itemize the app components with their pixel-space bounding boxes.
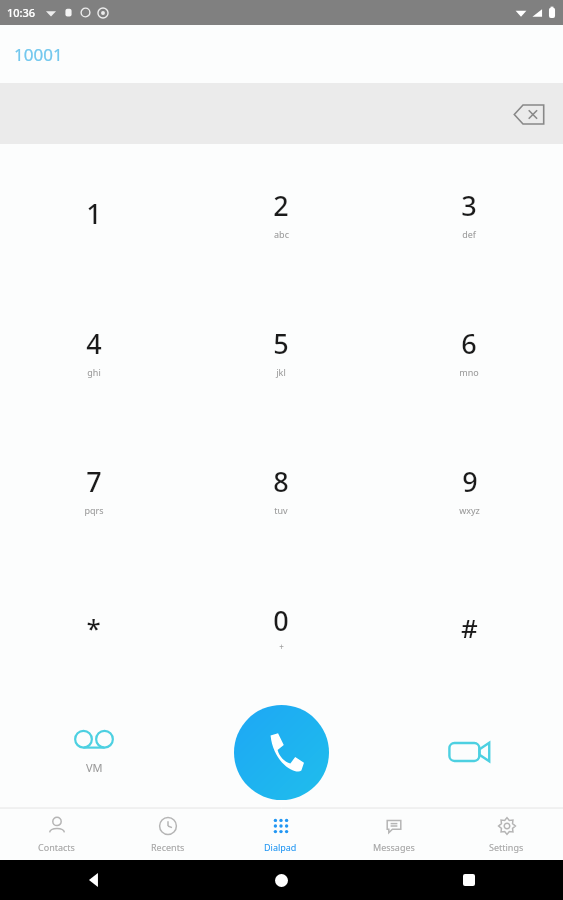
button[interactable]: Settings: [450, 808, 563, 860]
button[interactable]: Recents: [112, 808, 224, 860]
staticText: #: [461, 610, 478, 645]
staticText: def: [462, 228, 476, 240]
staticText: abc: [274, 228, 289, 240]
button[interactable]: Recent apps: [375, 860, 563, 900]
button[interactable]: 1: [0, 144, 187, 282]
staticText: ghi: [87, 366, 101, 378]
button[interactable]: *: [0, 558, 187, 696]
staticText: 4: [86, 325, 102, 362]
button[interactable]: 6: [375, 282, 563, 420]
button[interactable]: Home: [187, 860, 375, 900]
button[interactable]: Backspace: [505, 90, 553, 138]
staticText: Messages: [373, 841, 415, 853]
staticText: Dialpad: [264, 841, 297, 853]
button[interactable]: VM: [0, 696, 187, 808]
button[interactable]: Call: [234, 705, 329, 800]
staticText: VM: [86, 760, 103, 775]
staticText: Contacts: [38, 841, 75, 853]
button[interactable]: 5: [187, 282, 375, 420]
staticText: 1: [86, 195, 102, 232]
staticText: *: [86, 610, 101, 645]
button[interactable]: Back: [0, 860, 187, 900]
button[interactable]: 9: [375, 420, 563, 558]
staticText: tuv: [274, 504, 288, 516]
staticText: Settings: [489, 841, 524, 853]
staticText: 10001: [14, 43, 63, 66]
staticText: 0: [273, 602, 289, 639]
staticText: 7: [86, 463, 102, 500]
staticText: 9: [462, 463, 478, 500]
button[interactable]: Messages: [337, 808, 450, 860]
staticText: 3: [461, 187, 477, 224]
staticText: wxyz: [459, 504, 480, 516]
staticText: jkl: [276, 366, 286, 378]
staticText: 10:36: [7, 5, 36, 20]
button[interactable]: Contacts: [0, 808, 112, 860]
button[interactable]: Dialpad: [224, 808, 337, 860]
button[interactable]: 0: [187, 558, 375, 696]
button[interactable]: 3: [375, 144, 563, 282]
button[interactable]: 2: [187, 144, 375, 282]
staticText: Recents: [151, 841, 185, 853]
staticText: mno: [459, 366, 479, 378]
staticText: 6: [461, 325, 477, 362]
staticText: 8: [273, 463, 289, 500]
staticText: 2: [273, 187, 289, 224]
staticText: 5: [273, 325, 289, 362]
staticText: +: [279, 641, 284, 652]
button[interactable]: 4: [0, 282, 187, 420]
button[interactable]: #: [375, 558, 563, 696]
button[interactable]: Video call: [375, 696, 563, 808]
staticText: pqrs: [84, 504, 104, 516]
button[interactable]: 8: [187, 420, 375, 558]
button[interactable]: 7: [0, 420, 187, 558]
